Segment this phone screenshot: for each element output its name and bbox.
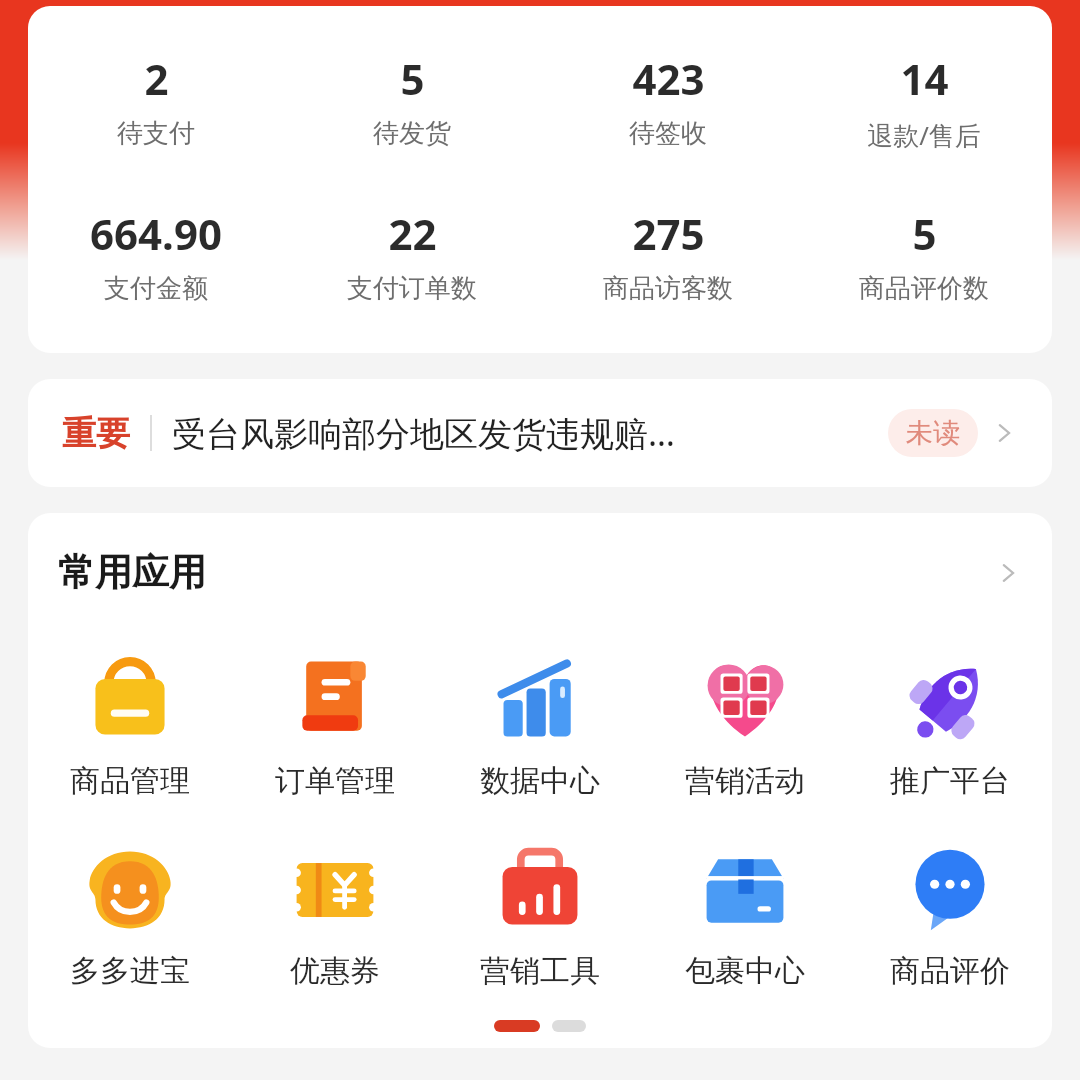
staticText: 待签收 bbox=[629, 117, 707, 150]
staticText: 商品评价数 bbox=[859, 272, 989, 305]
button[interactable]: 22 bbox=[284, 203, 540, 307]
staticText: 营销活动 bbox=[685, 762, 805, 800]
button[interactable]: 275 bbox=[540, 203, 796, 307]
staticText: 14 bbox=[900, 50, 949, 107]
staticText: 商品访客数 bbox=[603, 272, 733, 305]
staticText: 423 bbox=[632, 50, 705, 107]
button[interactable]: 优惠券 bbox=[232, 838, 437, 994]
button[interactable]: 423 bbox=[540, 48, 796, 152]
staticText: 支付订单数 bbox=[347, 272, 477, 305]
button[interactable]: 数据中心 bbox=[437, 648, 642, 804]
staticText: 多多进宝 bbox=[70, 952, 190, 990]
other: 查看公告 bbox=[990, 419, 1018, 447]
staticText: 22 bbox=[388, 205, 437, 262]
staticText: 订单管理 bbox=[275, 762, 395, 800]
staticText: 数据中心 bbox=[480, 762, 600, 800]
button[interactable]: 商品管理 bbox=[28, 648, 232, 804]
button[interactable]: 重要 bbox=[28, 379, 1052, 487]
button[interactable]: 营销工具 bbox=[437, 838, 642, 994]
button[interactable]: 订单管理 bbox=[232, 648, 437, 804]
button[interactable]: 5 bbox=[796, 203, 1052, 307]
staticText: 营销工具 bbox=[480, 952, 600, 990]
button[interactable]: 多多进宝 bbox=[28, 838, 232, 994]
staticText: 退款/售后 bbox=[867, 117, 981, 153]
staticText: 未读 bbox=[906, 416, 960, 450]
button[interactable]: 包裹中心 bbox=[642, 838, 847, 994]
button[interactable]: 5 bbox=[284, 48, 540, 152]
staticText: 受台风影响部分地区发货违规赔… bbox=[172, 410, 876, 456]
staticText: 待发货 bbox=[373, 117, 451, 150]
staticText: 5 bbox=[912, 205, 937, 262]
button[interactable]: 商品评价 bbox=[847, 838, 1052, 994]
other: 更多应用 bbox=[994, 559, 1022, 587]
button[interactable]: 营销活动 bbox=[642, 648, 847, 804]
staticText: 5 bbox=[400, 50, 425, 107]
staticText: 待支付 bbox=[117, 117, 195, 150]
staticText: 275 bbox=[632, 205, 705, 262]
staticText: 常用应用 bbox=[58, 549, 994, 596]
button[interactable]: 常用应用 bbox=[28, 549, 1052, 596]
staticText: 商品管理 bbox=[70, 762, 190, 800]
staticText: 推广平台 bbox=[890, 762, 1010, 800]
button[interactable]: 14 bbox=[796, 48, 1052, 155]
staticText: 优惠券 bbox=[290, 952, 380, 990]
button[interactable]: 2 bbox=[28, 48, 284, 152]
button[interactable]: 664.90 bbox=[28, 203, 284, 307]
button[interactable]: 推广平台 bbox=[847, 648, 1052, 804]
staticText: 商品评价 bbox=[890, 952, 1010, 990]
staticText: 支付金额 bbox=[104, 272, 208, 305]
staticText: 664.90 bbox=[90, 205, 222, 262]
staticText: 包裹中心 bbox=[685, 952, 805, 990]
staticText: 2 bbox=[144, 50, 169, 107]
staticText: 重要 bbox=[62, 412, 130, 455]
